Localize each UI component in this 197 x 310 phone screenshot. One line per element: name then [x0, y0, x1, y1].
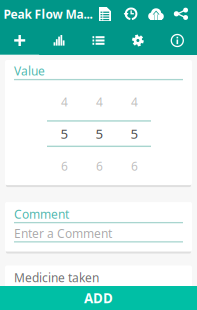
button[interactable]: Records	[79, 28, 118, 55]
button[interactable]: Settings	[118, 28, 158, 55]
button[interactable]: Share	[168, 0, 193, 28]
button[interactable]: Enter a Comment	[14, 225, 183, 241]
button[interactable]: Chart	[39, 28, 79, 55]
staticText: Comment	[14, 206, 69, 222]
button[interactable]: Upload to cloud	[143, 0, 168, 28]
staticText: Medicine taken	[14, 269, 99, 285]
button[interactable]: Add entry	[0, 28, 39, 55]
staticText: 5	[60, 125, 68, 142]
button[interactable]: Report	[92, 0, 117, 28]
staticText: 5	[130, 125, 138, 142]
staticText: Enter a Comment	[14, 225, 112, 241]
staticText: 6	[61, 158, 68, 174]
button[interactable]: About	[158, 28, 197, 55]
staticText: Peak Flow Ma...	[3, 6, 92, 22]
staticText: 6	[131, 158, 138, 174]
staticText: ADD	[84, 289, 113, 307]
button[interactable]: ADD	[0, 286, 197, 310]
staticText: 6	[96, 158, 103, 174]
button[interactable]: History	[117, 0, 143, 28]
staticText: 4	[96, 94, 103, 110]
staticText: 5	[95, 125, 103, 142]
staticText: 4	[131, 94, 138, 110]
staticText: Value	[14, 63, 45, 79]
staticText: 4	[61, 94, 68, 110]
